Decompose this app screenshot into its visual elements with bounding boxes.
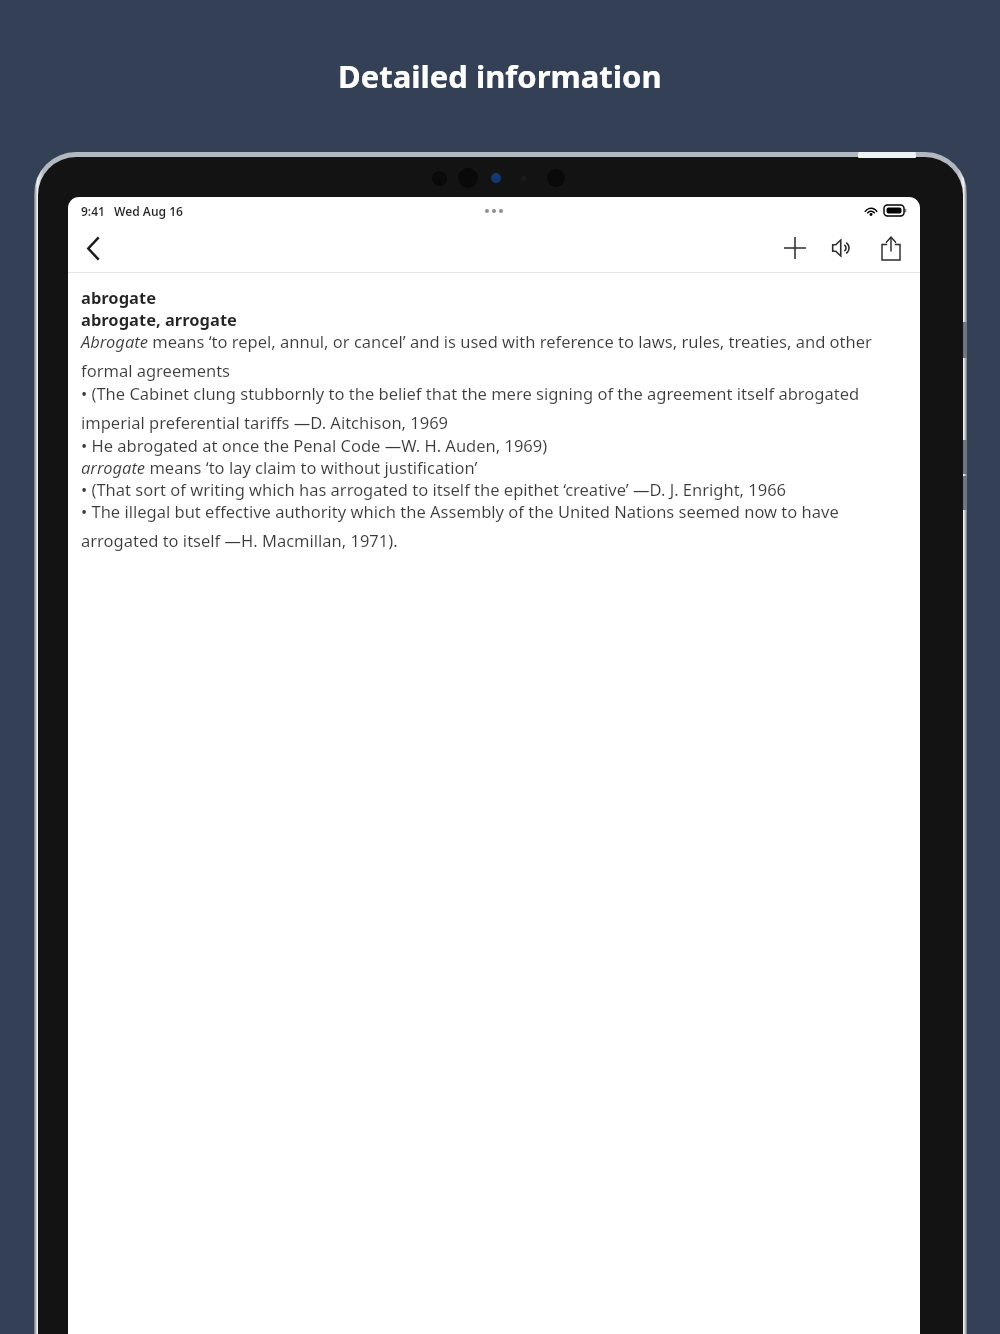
staticText: • (That sort of writing which has arroga… (81, 478, 787, 500)
staticText: 9:41 (81, 203, 105, 219)
staticText: abrogate (81, 286, 156, 308)
staticText: arrogate means ‘to lay claim to without … (81, 456, 478, 478)
staticText: • The illegal but effective authority wh… (81, 500, 904, 552)
button[interactable]: Add (772, 225, 818, 271)
button[interactable]: Pronounce (820, 225, 866, 271)
button[interactable]: Back (70, 225, 116, 271)
staticText: Abrogate means ‘to repel, annul, or canc… (81, 330, 904, 382)
staticText: Wed Aug 16 (114, 203, 183, 219)
staticText: abrogate, arrogate (81, 308, 237, 330)
staticText: • (The Cabinet clung stubbornly to the b… (81, 382, 904, 434)
staticText: Detailed information (338, 55, 662, 97)
staticText: • He abrogated at once the Penal Code —W… (81, 434, 548, 456)
button[interactable]: Share (868, 225, 914, 271)
